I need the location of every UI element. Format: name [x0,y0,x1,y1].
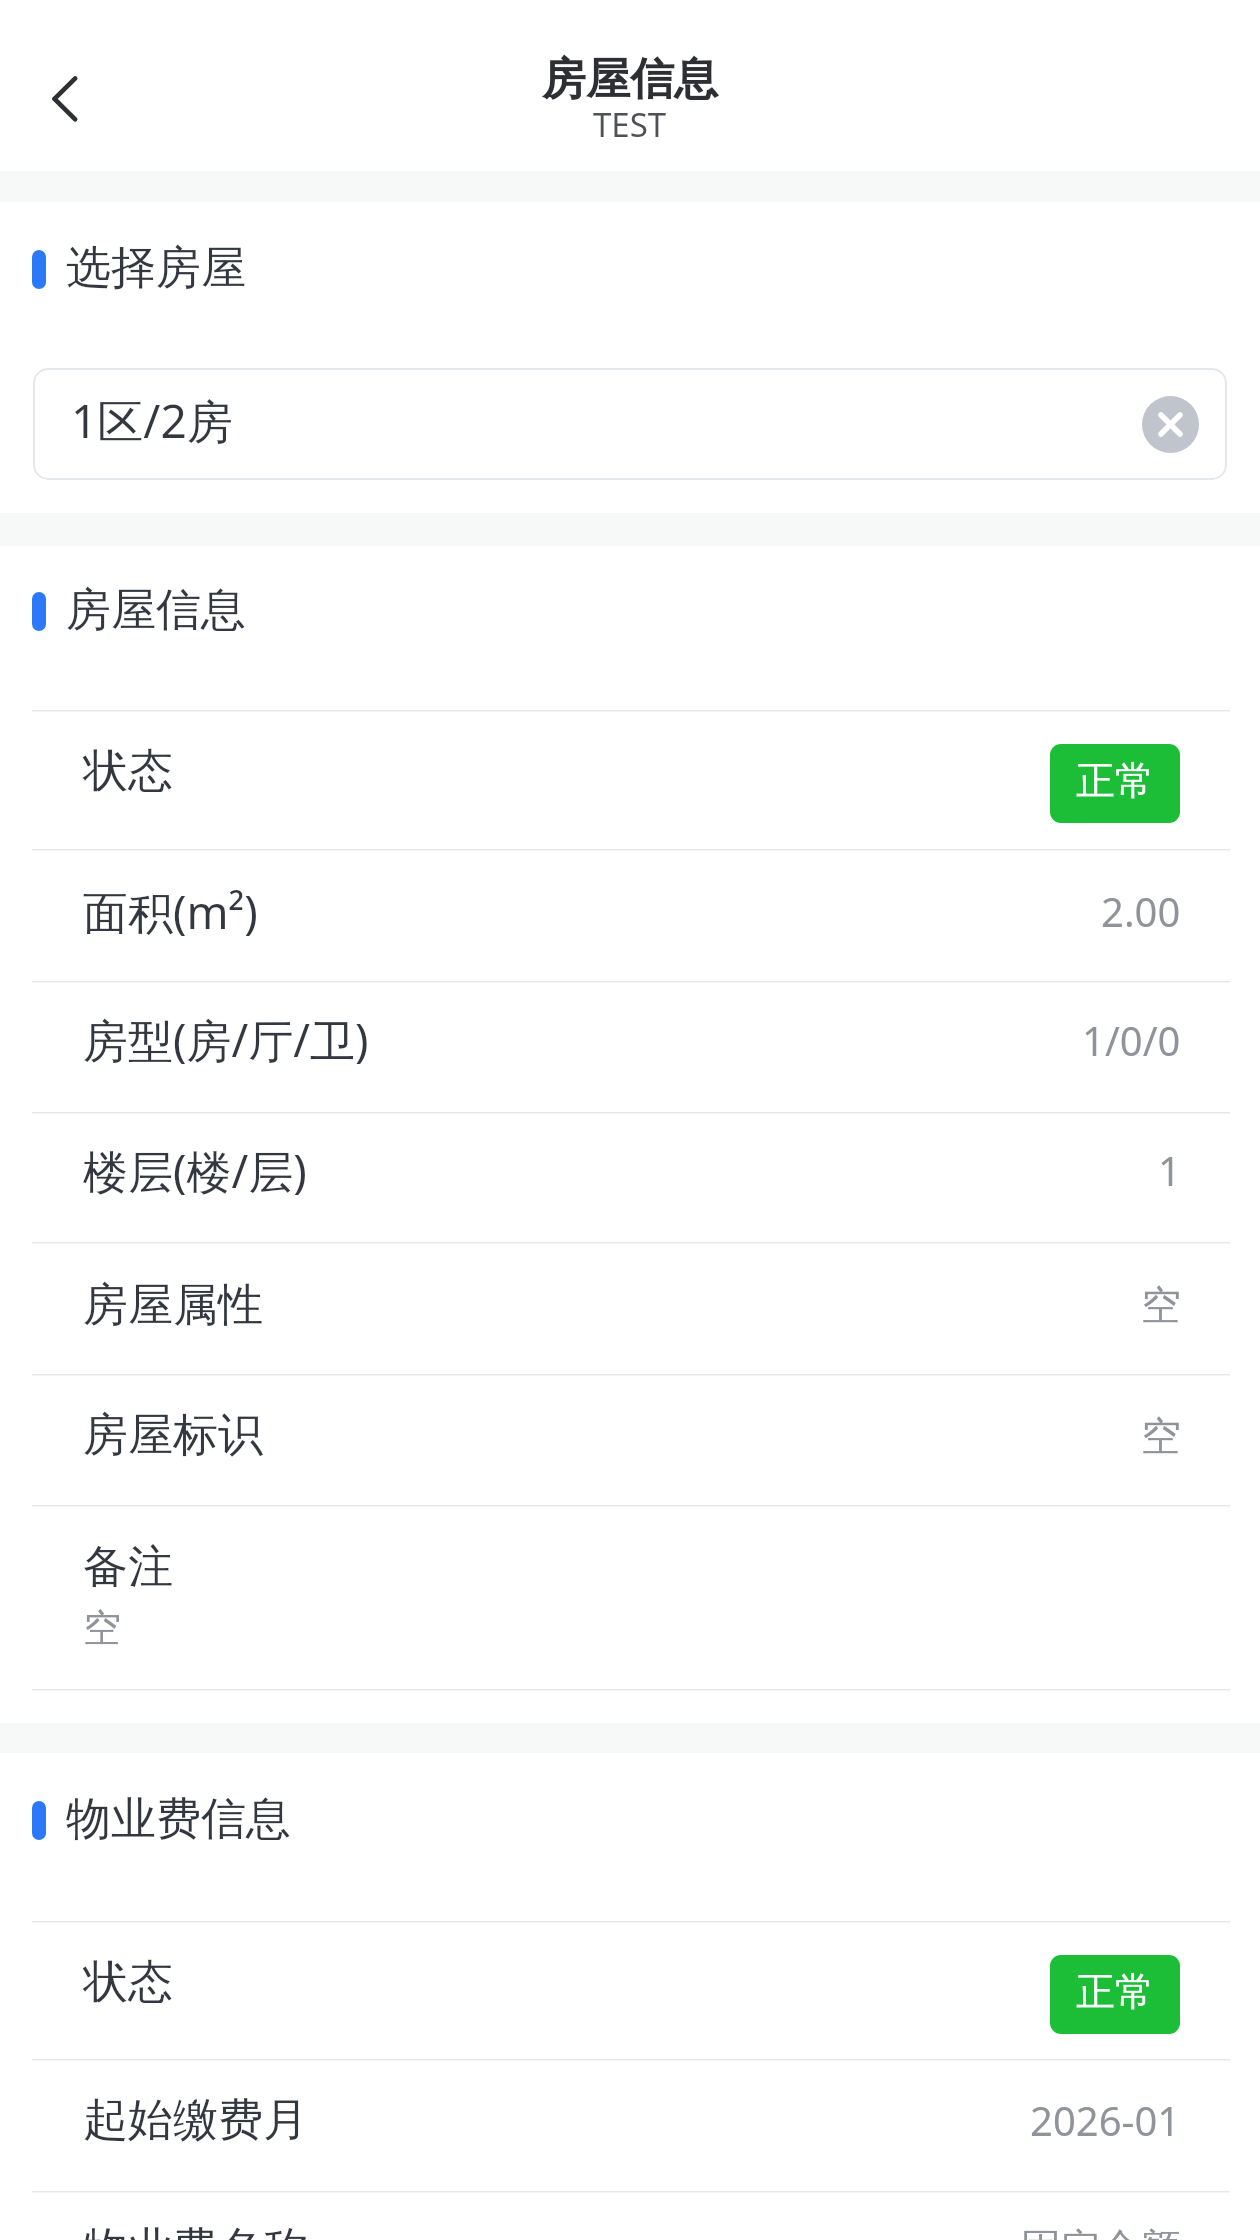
staticText: 空 [1141,1411,1181,1461]
staticText: 选择房屋 [66,240,246,297]
staticText: 正常 [1076,1967,1154,2016]
staticText: 楼层(楼/层) [83,1140,307,1201]
button[interactable]: 物业费名称 [0,2193,1260,2240]
staticText: 1区/2房 [71,389,233,452]
staticText: 固定金额 [1021,2223,1181,2240]
button[interactable]: 备注 [0,1507,1260,1689]
button[interactable]: 房型(房/厅/卫) [0,983,1260,1112]
staticText: 1 [1158,1143,1181,1197]
staticText: 物业费信息 [66,1791,291,1848]
staticText: 2026-01 [1030,2093,1181,2147]
button[interactable]: 楼层(楼/层) [0,1114,1260,1242]
staticText: 房屋属性 [83,1277,263,1334]
staticText: 房型(房/厅/卫) [83,1009,369,1070]
staticText: 状态 [83,743,173,800]
staticText: 物业费名称 [83,2221,308,2240]
staticText: 房屋信息 [66,582,246,639]
button[interactable]: 正常 [1050,1955,1180,2034]
staticText: TEST [593,102,667,147]
button[interactable]: Back [0,38,120,158]
staticText: 起始缴费月 [83,2092,308,2149]
staticText: 空 [1141,1280,1181,1330]
staticText: 空 [83,1604,121,1652]
staticText: 房屋标识 [83,1407,263,1464]
button[interactable]: 房屋标识 [0,1376,1260,1505]
staticText: 1/0/0 [1082,1013,1181,1067]
button[interactable]: 面积(m²) [0,851,1260,981]
button[interactable]: 状态 [0,712,1260,849]
button[interactable]: Clear selection [1142,396,1199,453]
button[interactable]: 状态 [0,1923,1260,2059]
staticText: 面积(m²) [83,881,258,942]
button[interactable]: 起始缴费月 [0,2061,1260,2191]
button[interactable]: 房屋属性 [0,1244,1260,1374]
staticText: 正常 [1076,756,1154,805]
staticText: 房屋信息 [542,52,718,107]
staticText: 2.00 [1101,884,1181,938]
staticText: 状态 [83,1954,173,2011]
staticText: 备注 [83,1539,173,1596]
button[interactable]: 正常 [1050,744,1180,823]
button[interactable]: 1区/2房 [33,368,1227,480]
